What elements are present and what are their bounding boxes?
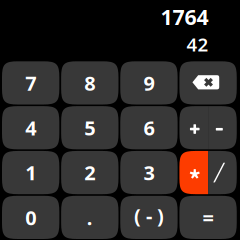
staticText: 0 (25, 204, 36, 231)
staticText: 9 (143, 70, 154, 96)
staticText: 2 (84, 159, 95, 186)
button[interactable]: 8 (61, 61, 118, 104)
button[interactable]: 9 (120, 61, 178, 104)
button[interactable]: Divide (208, 151, 237, 194)
staticText: . (87, 204, 93, 231)
button[interactable]: 4 (2, 106, 59, 149)
button[interactable]: Subtract (208, 106, 237, 149)
button[interactable]: 5 (61, 106, 118, 149)
staticText: 6 (143, 114, 154, 141)
staticText: 42 (186, 32, 208, 57)
button[interactable]: Delete (179, 61, 237, 104)
staticText: 3 (143, 159, 154, 186)
button[interactable]: Multiply (179, 151, 208, 194)
staticText: ( - ) (134, 202, 164, 229)
button[interactable]: . (61, 196, 118, 239)
button[interactable]: 7 (2, 61, 59, 104)
button[interactable]: 1 (2, 151, 59, 194)
button[interactable]: Add (179, 106, 208, 149)
button[interactable]: 3 (120, 151, 178, 194)
button[interactable]: = (179, 196, 237, 239)
staticText: 4 (25, 114, 36, 141)
button[interactable]: 2 (61, 151, 118, 194)
staticText: 1 (25, 159, 36, 186)
staticText: 1764 (160, 2, 208, 31)
staticText: = (203, 204, 214, 231)
button[interactable]: ( - ) (120, 196, 178, 239)
staticText: 8 (84, 70, 95, 96)
button[interactable]: 0 (2, 196, 59, 239)
staticText: 7 (25, 70, 36, 96)
staticText: 5 (84, 114, 95, 141)
button[interactable]: 6 (120, 106, 178, 149)
